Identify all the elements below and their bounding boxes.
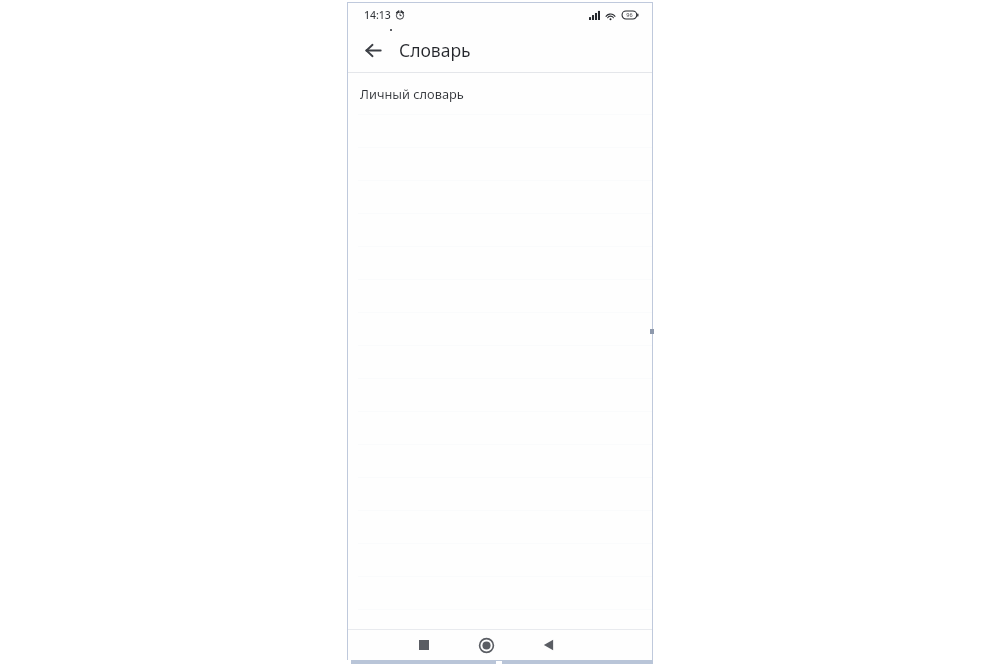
staticText: Словарь [399,38,471,62]
staticText: 96 [626,11,633,19]
button[interactable]: Back [533,630,563,660]
button[interactable]: Home [471,630,501,660]
button[interactable]: Recent apps [409,630,439,660]
button[interactable]: Back [355,32,391,68]
staticText: Личный словарь [360,85,464,102]
staticText: 14:13 [364,8,391,22]
button[interactable]: Личный словарь [347,73,653,114]
